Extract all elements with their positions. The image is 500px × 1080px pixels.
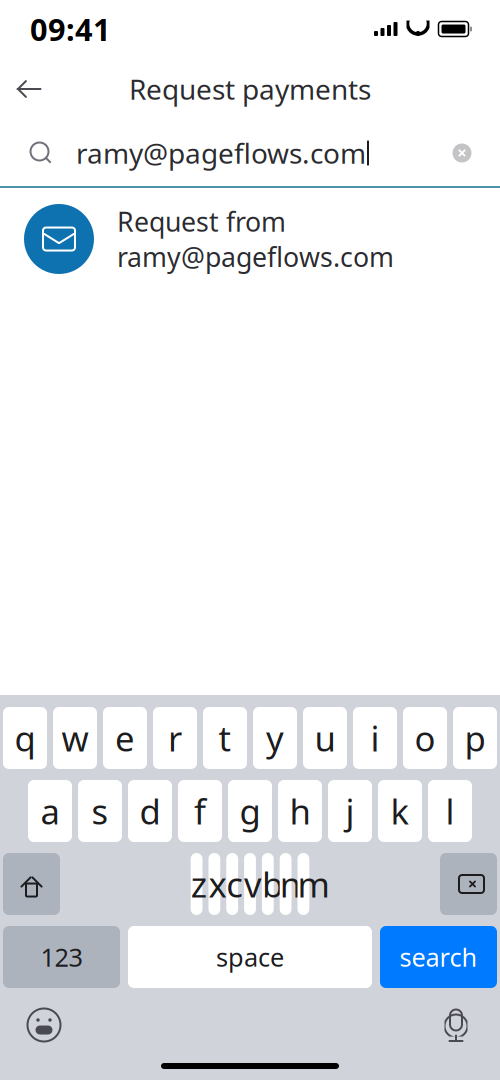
staticText: r bbox=[168, 715, 182, 761]
staticText: q bbox=[14, 715, 35, 761]
button[interactable]: b bbox=[262, 853, 274, 915]
button[interactable]: t bbox=[203, 707, 247, 769]
button[interactable]: a bbox=[28, 780, 72, 842]
staticText: j bbox=[345, 788, 354, 834]
staticText: n bbox=[280, 861, 291, 907]
button[interactable]: g bbox=[228, 780, 272, 842]
button[interactable]: w bbox=[53, 707, 97, 769]
staticText: o bbox=[414, 715, 435, 761]
staticText: Request payments bbox=[129, 70, 371, 108]
button[interactable]: Dictation bbox=[428, 1000, 484, 1050]
button[interactable]: n bbox=[280, 853, 291, 915]
staticText: m bbox=[297, 861, 309, 907]
button[interactable]: Back bbox=[0, 65, 58, 113]
staticText: Request from ramy@pageflows.com bbox=[117, 204, 394, 274]
staticText: space bbox=[216, 940, 284, 974]
staticText: ramy@pageflows.com bbox=[76, 134, 366, 172]
staticText: c bbox=[226, 861, 238, 907]
button[interactable]: m bbox=[297, 853, 309, 915]
staticText: p bbox=[464, 715, 485, 761]
staticText: 123 bbox=[40, 940, 82, 974]
button[interactable]: j bbox=[328, 780, 372, 842]
staticText: y bbox=[266, 715, 284, 761]
staticText: z bbox=[191, 861, 202, 907]
staticText: h bbox=[289, 788, 310, 834]
button[interactable]: p bbox=[453, 707, 497, 769]
button[interactable]: x bbox=[208, 853, 220, 915]
staticText: x bbox=[208, 861, 220, 907]
staticText: search bbox=[399, 940, 477, 974]
staticText: w bbox=[61, 715, 88, 761]
staticText: k bbox=[390, 788, 409, 834]
button[interactable]: l bbox=[428, 780, 472, 842]
button[interactable]: space bbox=[128, 926, 372, 988]
button[interactable]: Clear text bbox=[440, 131, 484, 175]
button[interactable]: i bbox=[353, 707, 397, 769]
button[interactable]: r bbox=[153, 707, 197, 769]
button[interactable]: s bbox=[78, 780, 122, 842]
staticText: l bbox=[445, 788, 454, 834]
button[interactable]: Emoji bbox=[16, 1000, 72, 1050]
button[interactable]: f bbox=[178, 780, 222, 842]
button[interactable]: o bbox=[403, 707, 447, 769]
button[interactable]: u bbox=[303, 707, 347, 769]
button[interactable]: Request from ramy@pageflows.com bbox=[0, 188, 500, 290]
button[interactable]: h bbox=[278, 780, 322, 842]
button[interactable]: z bbox=[191, 853, 202, 915]
button[interactable]: y bbox=[253, 707, 297, 769]
button[interactable]: e bbox=[103, 707, 147, 769]
staticText: e bbox=[115, 715, 135, 761]
staticText: g bbox=[239, 788, 260, 834]
staticText: u bbox=[314, 715, 335, 761]
button[interactable]: 123 bbox=[3, 926, 120, 988]
button[interactable]: v bbox=[244, 853, 256, 915]
button[interactable]: search bbox=[380, 926, 497, 988]
button[interactable]: k bbox=[378, 780, 422, 842]
button[interactable]: d bbox=[128, 780, 172, 842]
staticText: s bbox=[91, 788, 108, 834]
button[interactable]: Shift bbox=[3, 853, 60, 915]
button[interactable]: q bbox=[3, 707, 47, 769]
staticText: i bbox=[370, 715, 379, 761]
staticText: d bbox=[139, 788, 160, 834]
staticText: 09:41 bbox=[30, 9, 111, 49]
button[interactable]: c bbox=[226, 853, 238, 915]
staticText: f bbox=[194, 788, 206, 834]
staticText: a bbox=[40, 788, 59, 834]
staticText: t bbox=[218, 715, 231, 761]
staticText: b bbox=[262, 861, 274, 907]
button[interactable]: Delete bbox=[440, 853, 497, 915]
staticText: v bbox=[244, 861, 256, 907]
